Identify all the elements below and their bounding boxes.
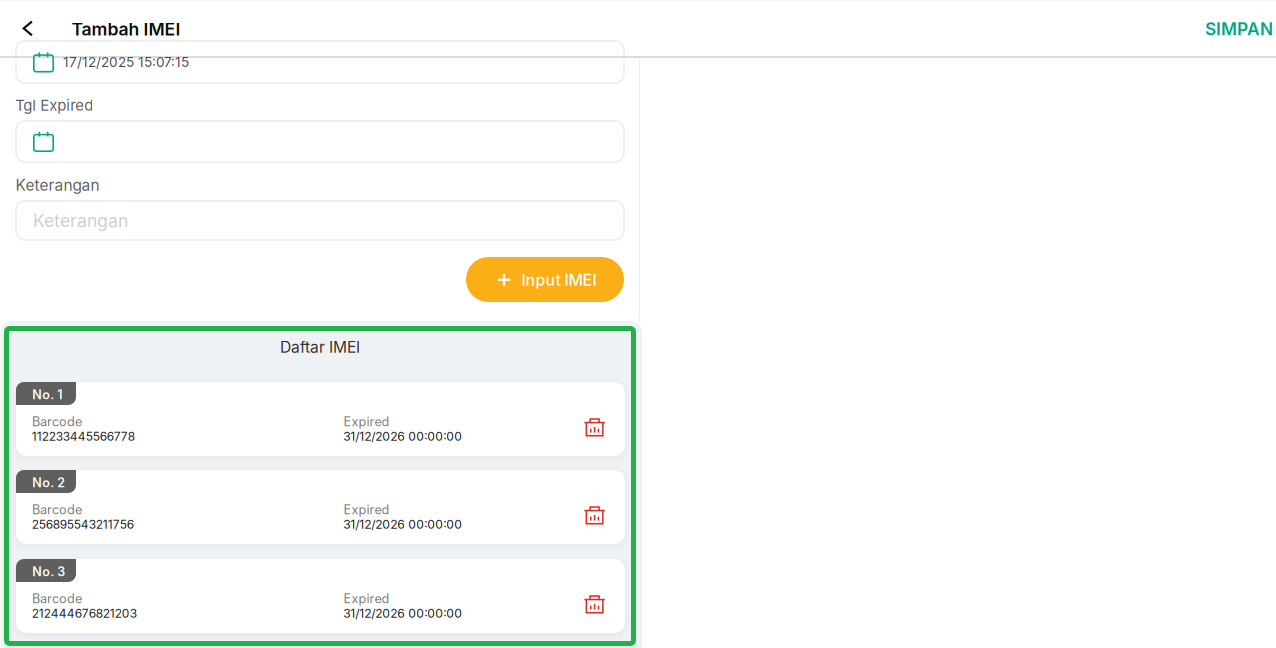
staticText: No. 2 <box>32 475 65 490</box>
staticText: Keterangan <box>15 176 99 194</box>
button[interactable]: Hapus IMEI nomor 3 <box>573 580 617 624</box>
staticText: Keterangan <box>33 210 128 231</box>
staticText: Expired <box>343 414 389 429</box>
button[interactable]: Hapus IMEI nomor 2 <box>573 491 617 535</box>
staticText: Barcode <box>32 591 82 606</box>
button[interactable]: Input IMEI <box>466 257 624 302</box>
button[interactable]: Kembali <box>6 6 50 50</box>
staticText: Input IMEI <box>521 270 596 289</box>
staticText: Daftar IMEI <box>280 338 360 356</box>
staticText: Expired <box>343 591 389 606</box>
staticText: 31/12/2026 00:00:00 <box>343 517 462 532</box>
staticText: Tambah IMEI <box>71 18 180 40</box>
button[interactable]: 17/12/2025 15:07:15 <box>16 41 624 83</box>
staticText: Tgl Expired <box>15 96 93 114</box>
staticText: 212444676821203 <box>32 606 137 620</box>
staticText: No. 3 <box>32 564 65 579</box>
staticText: 31/12/2026 00:00:00 <box>343 429 462 444</box>
staticText: 17/12/2025 15:07:15 <box>63 54 189 70</box>
staticText: Barcode <box>32 414 82 429</box>
button[interactable]: Hapus IMEI nomor 1 <box>573 403 617 447</box>
staticText: No. 1 <box>32 387 62 402</box>
staticText: Barcode <box>32 502 82 517</box>
staticText: Expired <box>343 502 389 517</box>
button[interactable]: Keterangan <box>16 201 624 240</box>
button[interactable]: SIMPAN <box>1183 6 1273 52</box>
staticText: SIMPAN <box>1205 18 1273 39</box>
staticText: 31/12/2026 00:00:00 <box>343 606 462 621</box>
staticText: 256895543211756 <box>32 517 134 531</box>
button[interactable]: Pilih Tgl Expired <box>16 121 624 162</box>
staticText: 112233445566778 <box>32 429 135 443</box>
